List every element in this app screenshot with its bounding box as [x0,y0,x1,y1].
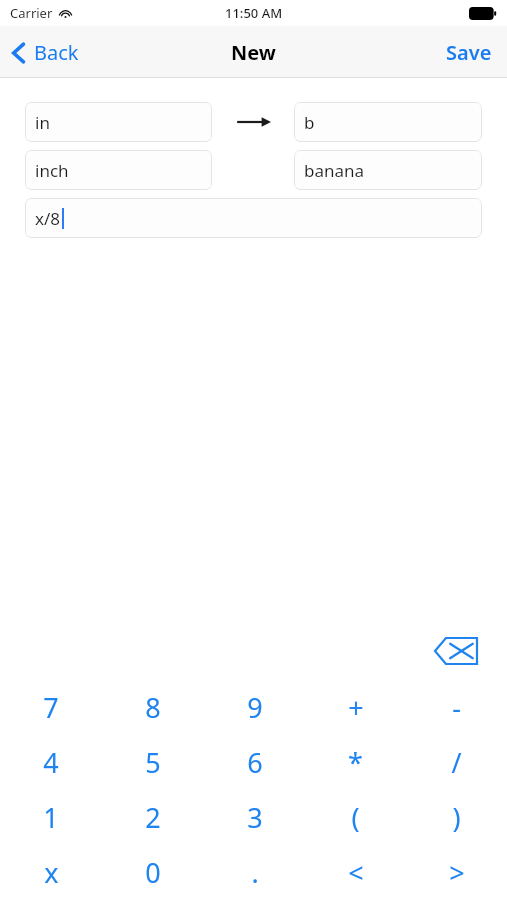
button[interactable]: Save [431,33,507,72]
button[interactable]: 0 [102,845,204,900]
staticText: 4 [43,744,59,781]
staticText: ( [351,799,360,836]
staticText: inch [35,159,69,182]
button[interactable]: x/8 [25,198,482,238]
button[interactable]: 6 [204,735,305,790]
staticText: x [44,854,59,891]
staticText: + [348,689,364,726]
button[interactable]: < [305,845,406,900]
button[interactable]: b [294,102,482,142]
staticText: > [449,854,465,891]
button[interactable]: / [406,735,507,790]
button[interactable]: - [406,680,507,735]
staticText: in [35,111,50,134]
staticText: 1 [43,799,59,836]
button[interactable]: 8 [102,680,204,735]
staticText: b [304,111,315,134]
button[interactable]: * [305,735,406,790]
staticText: 3 [247,799,263,836]
staticText: 9 [247,689,263,726]
staticText: x/8 [35,207,61,230]
button[interactable]: Backspace [424,627,488,675]
button[interactable]: + [305,680,406,735]
button[interactable]: ) [406,790,507,845]
button[interactable]: 4 [0,735,102,790]
staticText: Back [34,39,79,66]
button[interactable]: . [204,845,305,900]
button[interactable]: inch [25,150,212,190]
staticText: - [452,689,461,726]
button[interactable]: in [25,102,212,142]
staticText: New [231,39,276,66]
button[interactable]: ( [305,790,406,845]
staticText: 5 [145,744,161,781]
staticText: . [251,854,259,891]
staticText: 11:50 AM [225,4,283,22]
staticText: 8 [145,689,161,726]
staticText: 2 [145,799,161,836]
button[interactable]: banana [294,150,482,190]
staticText: / [451,744,462,781]
button[interactable]: > [406,845,507,900]
staticText: banana [304,159,365,182]
button[interactable]: Back [0,33,91,72]
button[interactable]: 9 [204,680,305,735]
staticText: Carrier [10,4,53,22]
button[interactable]: 2 [102,790,204,845]
staticText: < [348,854,364,891]
button[interactable]: 3 [204,790,305,845]
staticText: ) [452,799,461,836]
button[interactable]: x [0,845,102,900]
staticText: Save [446,39,492,66]
button[interactable]: 1 [0,790,102,845]
staticText: * [348,744,363,781]
staticText: 7 [43,689,59,726]
button[interactable]: 7 [0,680,102,735]
staticText: 0 [145,854,161,891]
staticText: 6 [247,744,263,781]
button[interactable]: 5 [102,735,204,790]
